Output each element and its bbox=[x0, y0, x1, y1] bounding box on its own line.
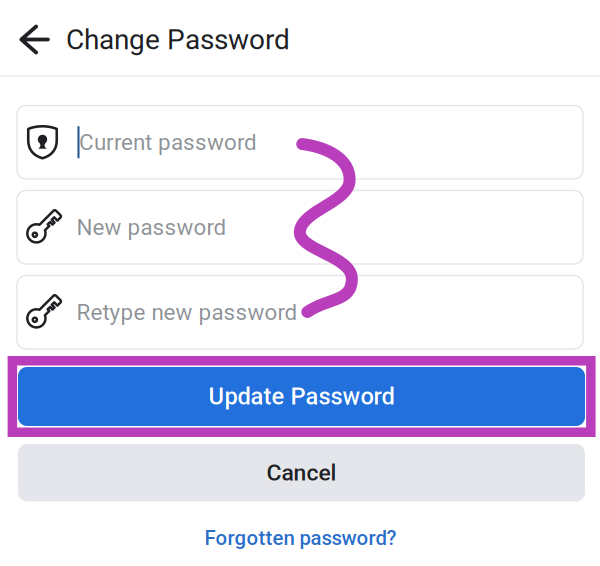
button[interactable]: Cancel bbox=[18, 444, 585, 501]
button[interactable]: Back bbox=[0, 8, 61, 68]
staticText: Update Password bbox=[208, 383, 394, 410]
button[interactable]: Update Password bbox=[18, 367, 585, 426]
staticText: Change Password bbox=[66, 23, 290, 56]
staticText: Forgotten password? bbox=[204, 526, 396, 550]
staticText: Cancel bbox=[266, 459, 336, 486]
staticText: Current password bbox=[79, 129, 257, 155]
button[interactable]: Forgotten password? bbox=[17, 521, 584, 555]
staticText: Retype new password bbox=[76, 299, 297, 325]
staticText: New password bbox=[76, 214, 226, 240]
